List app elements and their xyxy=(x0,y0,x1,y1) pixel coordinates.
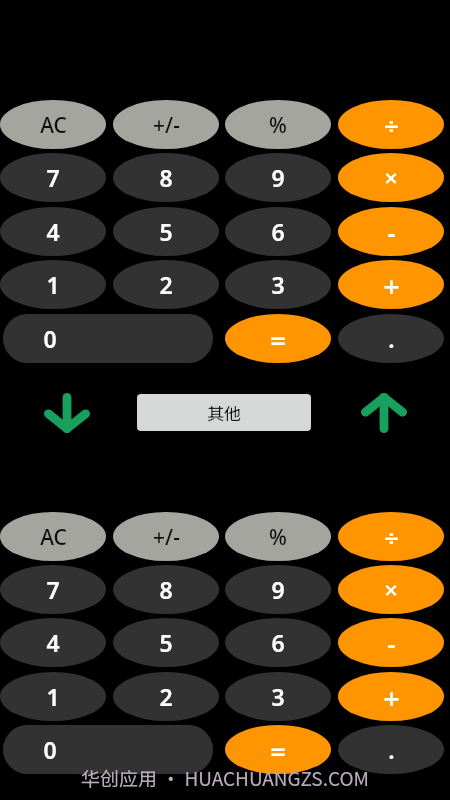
staticText: 5 xyxy=(159,627,173,658)
staticText: . xyxy=(388,323,395,354)
button[interactable]: 7 xyxy=(0,565,106,614)
staticText: = xyxy=(269,329,287,353)
staticText: ÷ xyxy=(383,526,400,549)
button[interactable]: 7 xyxy=(0,153,106,202)
staticText: + xyxy=(382,274,401,300)
staticText: 9 xyxy=(271,574,285,605)
staticText: 8 xyxy=(159,574,173,605)
button[interactable]: + xyxy=(338,260,444,309)
staticText: 7 xyxy=(46,162,60,193)
button[interactable]: . xyxy=(338,725,444,774)
staticText: 0 xyxy=(43,734,57,765)
button[interactable]: × xyxy=(338,153,444,202)
button[interactable]: 2 xyxy=(113,260,219,309)
button[interactable]: 3 xyxy=(225,672,331,721)
button[interactable]: AC xyxy=(0,512,106,561)
staticText: % xyxy=(269,523,287,552)
button[interactable]: % xyxy=(225,100,331,149)
staticText: 4 xyxy=(46,216,60,247)
staticText: 1 xyxy=(46,681,60,712)
button[interactable]: = xyxy=(225,725,331,774)
button[interactable]: + xyxy=(338,672,444,721)
button[interactable]: Scroll up xyxy=(359,391,409,435)
staticText: % xyxy=(269,111,287,140)
staticText: 6 xyxy=(271,216,285,247)
button[interactable]: 0 xyxy=(3,725,213,774)
staticText: 9 xyxy=(271,162,285,193)
staticText: 2 xyxy=(159,269,173,300)
button[interactable]: 1 xyxy=(0,260,106,309)
button[interactable]: % xyxy=(225,512,331,561)
button[interactable]: 9 xyxy=(225,153,331,202)
staticText: = xyxy=(269,740,287,764)
button[interactable]: 8 xyxy=(113,153,219,202)
button[interactable]: +/- xyxy=(113,100,219,149)
button[interactable]: 0 xyxy=(3,314,213,363)
staticText: 其他 xyxy=(207,400,241,425)
button[interactable]: 2 xyxy=(113,672,219,721)
staticText: 4 xyxy=(46,627,60,658)
button[interactable]: 3 xyxy=(225,260,331,309)
button[interactable]: ÷ xyxy=(338,512,444,561)
staticText: - xyxy=(387,633,396,656)
staticText: 1 xyxy=(46,269,60,300)
button[interactable]: +/- xyxy=(113,512,219,561)
button[interactable]: 其他 xyxy=(137,394,311,431)
button[interactable]: ÷ xyxy=(338,100,444,149)
button[interactable]: 5 xyxy=(113,207,219,256)
button[interactable]: - xyxy=(338,207,444,256)
staticText: 2 xyxy=(159,681,173,712)
button[interactable]: 5 xyxy=(113,618,219,667)
staticText: AC xyxy=(40,523,67,552)
button[interactable]: AC xyxy=(0,100,106,149)
staticText: +/- xyxy=(153,523,180,552)
staticText: + xyxy=(382,686,401,712)
button[interactable]: 8 xyxy=(113,565,219,614)
button[interactable]: = xyxy=(225,314,331,363)
staticText: 6 xyxy=(271,627,285,658)
staticText: 3 xyxy=(271,681,285,712)
button[interactable]: . xyxy=(338,314,444,363)
button[interactable]: 9 xyxy=(225,565,331,614)
button[interactable]: Scroll down xyxy=(42,391,92,435)
staticText: 7 xyxy=(46,574,60,605)
button[interactable]: × xyxy=(338,565,444,614)
staticText: 3 xyxy=(271,269,285,300)
staticText: +/- xyxy=(153,111,180,140)
staticText: × xyxy=(383,167,399,188)
staticText: . xyxy=(388,734,395,765)
staticText: 华创应用 • HUACHUANGZS.COM xyxy=(81,764,369,792)
staticText: AC xyxy=(40,111,67,140)
button[interactable]: 4 xyxy=(0,207,106,256)
staticText: 8 xyxy=(159,162,173,193)
button[interactable]: 6 xyxy=(225,207,331,256)
button[interactable]: 1 xyxy=(0,672,106,721)
staticText: ÷ xyxy=(383,114,400,137)
staticText: - xyxy=(387,222,396,245)
button[interactable]: 6 xyxy=(225,618,331,667)
staticText: × xyxy=(383,579,399,600)
button[interactable]: - xyxy=(338,618,444,667)
staticText: 5 xyxy=(159,216,173,247)
button[interactable]: 4 xyxy=(0,618,106,667)
staticText: 0 xyxy=(43,323,57,354)
